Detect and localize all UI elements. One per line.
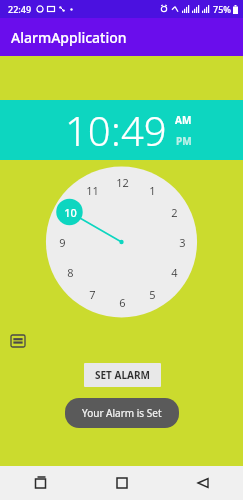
staticText: 4 [171,265,178,279]
button[interactable]: Home [81,466,162,500]
button[interactable]: PM [174,133,194,149]
staticText: 2 [171,205,178,219]
staticText: 1 [149,183,156,197]
staticText: AlarmApplication [11,28,127,47]
staticText: 75% [213,3,231,15]
staticText: SET ALARM [95,368,150,382]
staticText: Your Alarm is Set [82,406,162,420]
button[interactable]: 3 [173,235,191,249]
staticText: 5 [149,287,156,301]
button[interactable]: 7 [83,287,101,301]
button[interactable]: 10 [61,205,79,219]
staticText: 8 [67,265,74,279]
button[interactable]: 9 [53,235,71,249]
button[interactable]: 12 [113,175,131,189]
button[interactable]: AM [173,112,194,128]
staticText: 12 [116,175,129,189]
staticText: 9 [59,235,66,249]
button[interactable]: 8 [61,265,79,279]
button[interactable]: 11 [83,183,101,197]
staticText: 7 [89,287,96,301]
button[interactable]: 2 [165,205,183,219]
button[interactable]: Recent apps [0,466,81,500]
button[interactable]: 4 [165,265,183,279]
button[interactable]: 1 [143,183,161,197]
button[interactable]: 5 [143,287,161,301]
button[interactable]: SET ALARM [84,363,161,387]
staticText: 6 [119,295,126,309]
staticText: 11 [86,183,99,197]
button[interactable]: 6 [113,295,131,309]
button[interactable]: Switch to keyboard input [11,335,25,347]
button[interactable]: 49 [121,103,167,157]
staticText: 3 [179,235,186,249]
staticText: : [111,103,121,157]
button[interactable]: 10 [65,103,111,157]
button[interactable]: Back [162,466,243,500]
staticText: AM [175,113,192,127]
staticText: PM [176,134,192,148]
staticText: 10 [64,205,77,219]
staticText: 22:49 [8,3,32,15]
